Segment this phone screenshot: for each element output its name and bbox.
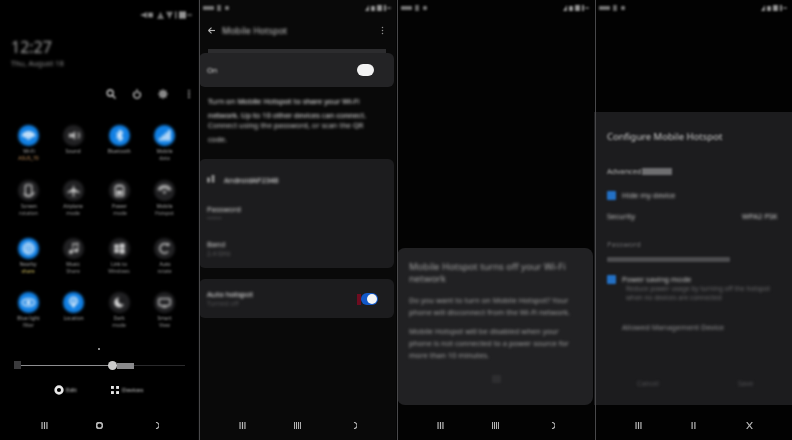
button[interactable]: More options <box>376 24 389 37</box>
button[interactable]: Search <box>103 86 118 101</box>
staticText: Mobile Hotspot <box>222 24 288 36</box>
button[interactable]: Wi-Fi <box>7 122 49 162</box>
staticText: Share <box>66 268 80 275</box>
button[interactable]: Password <box>199 195 394 231</box>
staticText: Thu, August 18 <box>11 58 64 68</box>
button[interactable]: Back <box>737 413 761 437</box>
button[interactable]: Home <box>681 413 705 437</box>
staticText: Location <box>63 315 84 322</box>
staticText: 12:27 <box>11 36 52 58</box>
staticText: Turned off <box>207 299 239 308</box>
staticText: Security <box>607 211 636 221</box>
staticText: mode <box>112 322 126 329</box>
staticText: AndroidAP2348 <box>224 175 279 185</box>
button[interactable]: Nearby <box>7 235 49 275</box>
button[interactable]: Location <box>52 289 94 322</box>
button[interactable]: Smart <box>143 289 185 329</box>
button[interactable]: Quick settings menu <box>155 86 170 101</box>
staticText: data <box>159 155 170 162</box>
button[interactable]: Mobile <box>143 122 185 162</box>
staticText: rotate <box>157 268 172 275</box>
button[interactable]: Band <box>199 231 394 265</box>
button[interactable]: Home <box>483 413 507 437</box>
button[interactable]: Recent apps <box>32 413 56 437</box>
staticText: On <box>207 65 218 75</box>
staticText: Music <box>66 261 80 268</box>
button[interactable]: Edit <box>53 383 79 397</box>
staticText: Windows <box>108 268 130 275</box>
staticText: Link to <box>111 261 127 268</box>
button[interactable]: Power off <box>129 86 144 101</box>
staticText: Do you want to turn on Mobile Hotspot? Y… <box>409 295 581 318</box>
staticText: share <box>21 268 35 275</box>
staticText: Blue light <box>17 315 40 322</box>
staticText: Hotspot <box>155 210 174 217</box>
staticText: Band <box>207 239 226 249</box>
button[interactable]: Recent apps <box>428 413 452 437</box>
staticText: Cancel <box>637 379 659 389</box>
button[interactable]: Cancel <box>637 379 659 389</box>
staticText: Hide my device <box>622 190 676 200</box>
button[interactable]: More options <box>181 86 196 101</box>
staticText: 2.4 GHz <box>207 249 231 258</box>
button[interactable]: On <box>199 53 394 87</box>
staticText: Bluetooth <box>107 148 131 155</box>
button[interactable]: Sound <box>52 122 94 155</box>
button[interactable]: Auto hotspot <box>199 279 394 318</box>
staticText: Connect using the password, or scan the … <box>208 120 372 144</box>
staticText: Reduce power usage by turning off the ho… <box>626 284 782 302</box>
button[interactable]: Home <box>87 413 111 437</box>
button[interactable]: Link to <box>98 235 140 275</box>
staticText: Advanced <box>607 166 642 176</box>
button[interactable]: Power <box>98 177 140 217</box>
button[interactable]: Back <box>341 413 365 437</box>
button[interactable]: Bluetooth <box>98 122 140 155</box>
button[interactable]: Auto <box>143 235 185 275</box>
staticText: •••••• <box>207 214 222 223</box>
button[interactable]: Mobile <box>143 177 185 217</box>
button[interactable]: Screen <box>7 177 49 217</box>
staticText: ASUS_70 <box>18 155 39 162</box>
button[interactable]: AndroidAP2348 <box>199 165 394 195</box>
staticText: Screen <box>21 203 37 210</box>
staticText: Sound <box>65 148 81 155</box>
staticText: Mobile Hotspot turns off your Wi-Fi netw… <box>409 260 566 285</box>
button[interactable]: Home <box>285 413 309 437</box>
button[interactable]: Recent apps <box>230 413 254 437</box>
button[interactable]: Devices <box>109 383 146 397</box>
button[interactable]: Airplane <box>52 177 94 217</box>
button[interactable]: Back <box>539 413 563 437</box>
staticText: Password <box>607 239 641 249</box>
staticText: Nearby <box>19 261 37 268</box>
staticText: Save <box>738 379 754 389</box>
staticText: Mobile Hotspot will be disabled when you… <box>409 326 581 361</box>
staticText: Password <box>207 204 241 214</box>
staticText: Auto <box>159 261 171 268</box>
staticText: Airplane <box>63 203 83 210</box>
button[interactable]: Music <box>52 235 94 275</box>
staticText: mode <box>66 210 80 217</box>
button[interactable]: Dark <box>98 289 140 329</box>
button[interactable]: Recent apps <box>626 413 650 437</box>
staticText: Mobile <box>156 203 173 210</box>
staticText: Power saving mode <box>622 274 692 284</box>
staticText: Edit <box>66 386 77 394</box>
staticText: Configure Mobile Hotspot <box>607 130 723 143</box>
staticText: filter <box>23 322 34 329</box>
staticText: Turn on Mobile Hotspot to share your Wi-… <box>208 96 372 120</box>
staticText: mode <box>113 210 127 217</box>
staticText: Auto hotspot <box>207 289 253 299</box>
button[interactable]: Navigate up <box>205 24 218 37</box>
button[interactable]: Hide my device <box>607 190 782 200</box>
staticText: Allowed Management Device <box>622 322 725 332</box>
staticText: Dark <box>113 315 125 322</box>
button[interactable]: Back <box>143 413 167 437</box>
staticText: Smart <box>157 315 172 322</box>
button[interactable]: Blue light <box>7 289 49 329</box>
button[interactable]: Power saving mode <box>607 274 782 302</box>
button[interactable]: Save <box>738 379 754 389</box>
staticText: rotation <box>19 210 38 217</box>
staticText: Power <box>112 203 127 210</box>
staticText: Mobile <box>156 148 173 155</box>
staticText: Wi-Fi <box>23 148 35 155</box>
